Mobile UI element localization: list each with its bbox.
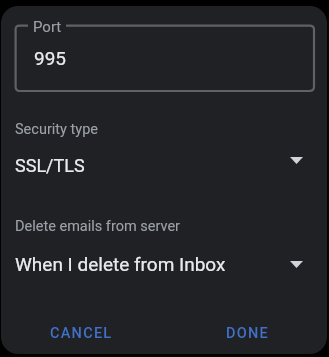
other: Security type dropdown — [290, 157, 303, 164]
button[interactable]: DONE — [218, 319, 277, 348]
staticText: Delete emails from server — [15, 218, 181, 235]
staticText: 995 — [34, 47, 67, 69]
staticText: Security type — [15, 121, 98, 138]
button[interactable]: CANCEL — [42, 319, 121, 348]
button[interactable]: SSL/TLS — [1, 149, 327, 181]
staticText: CANCEL — [50, 325, 113, 342]
staticText: SSL/TLS — [15, 155, 85, 176]
other: Delete emails from server dropdown — [290, 261, 303, 268]
button[interactable]: When I delete from Inbox — [1, 248, 327, 280]
staticText: Port — [33, 18, 62, 36]
staticText: When I delete from Inbox — [15, 253, 226, 275]
staticText: DONE — [226, 325, 269, 342]
button[interactable]: Port — [15, 25, 315, 92]
